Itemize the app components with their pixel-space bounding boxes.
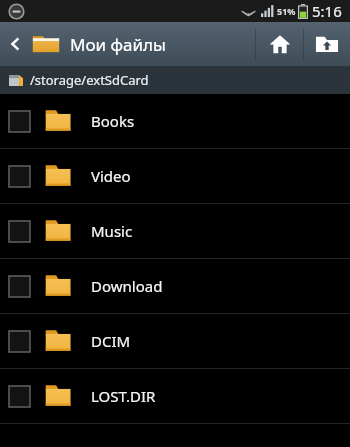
button[interactable]: Select Music xyxy=(0,204,350,259)
button[interactable]: Select Video xyxy=(0,149,350,204)
staticText: DCIM xyxy=(91,331,131,351)
staticText: Books xyxy=(91,111,135,131)
other: Back xyxy=(6,34,26,54)
button[interactable]: Select Download xyxy=(9,276,30,297)
button[interactable]: Select Music xyxy=(9,221,30,242)
staticText: Download xyxy=(91,276,163,296)
button[interactable]: Select DCIM xyxy=(9,331,30,352)
staticText: Music xyxy=(91,221,133,241)
staticText: 5:16 xyxy=(312,1,342,21)
button[interactable]: Home xyxy=(256,22,303,66)
staticText: Мои файлы xyxy=(70,33,166,56)
button[interactable]: Select Books xyxy=(9,111,30,132)
button[interactable]: Back xyxy=(0,32,168,56)
button[interactable]: Select LOST.DIR xyxy=(0,369,350,424)
staticText: LOST.DIR xyxy=(91,386,156,406)
button[interactable]: Select Books xyxy=(0,94,350,149)
staticText: Video xyxy=(91,166,131,186)
button[interactable]: Select Download xyxy=(0,259,350,314)
staticText: 51% xyxy=(277,5,296,17)
button[interactable]: /storage/extSdCard xyxy=(0,66,350,94)
staticText: /storage/extSdCard xyxy=(30,71,149,89)
button[interactable]: Up one level xyxy=(304,22,350,66)
button[interactable]: Select LOST.DIR xyxy=(9,386,30,407)
button[interactable]: Select DCIM xyxy=(0,314,350,369)
button[interactable]: Select Video xyxy=(9,166,30,187)
